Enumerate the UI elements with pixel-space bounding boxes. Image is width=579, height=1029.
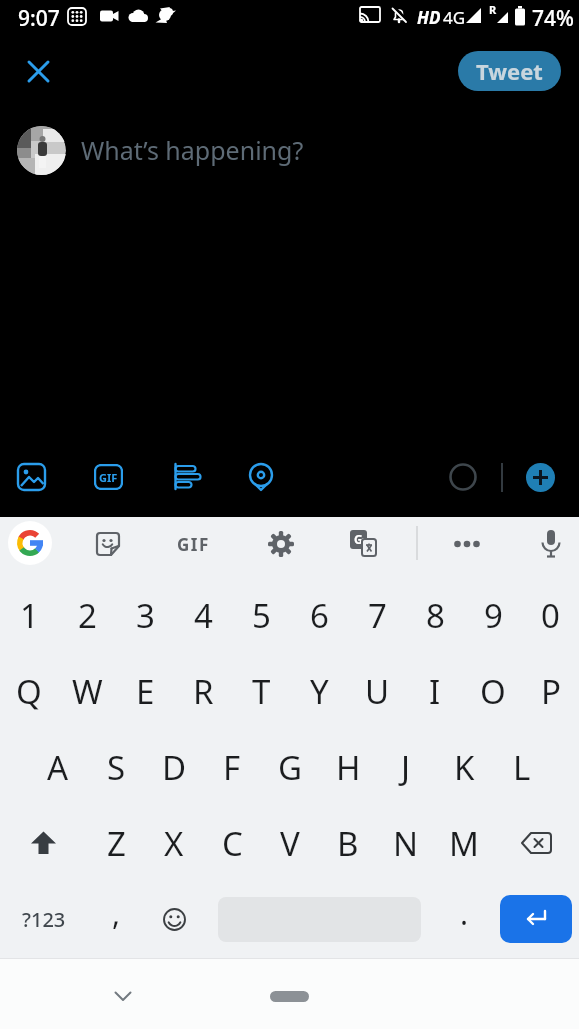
staticText: 9 [484,593,503,638]
staticText: D [162,745,187,790]
button[interactable] [8,521,52,565]
button[interactable]: Y [290,653,348,729]
button[interactable]: M [435,805,493,881]
button[interactable]: W [58,653,116,729]
button[interactable]: P [522,653,579,729]
button[interactable]: U [348,653,406,729]
button[interactable]: 5 [232,577,290,653]
staticText: S [107,745,126,790]
button[interactable]: G [344,524,384,564]
staticText: V [280,821,300,866]
button[interactable] [531,524,571,564]
staticText: 5 [252,593,271,638]
staticText: G [278,745,303,790]
button[interactable]: 6 [290,577,348,653]
staticText: Y [310,669,329,714]
button[interactable]: F [203,729,261,805]
button[interactable]: C [203,805,261,881]
button[interactable]: K [435,729,493,805]
button[interactable] [239,455,283,499]
button[interactable]: . [435,881,493,957]
button[interactable]: G [261,729,319,805]
button[interactable]: N [377,805,435,881]
staticText: W [72,669,103,714]
button[interactable]: T [232,653,290,729]
button[interactable] [103,980,143,1012]
staticText: 2 [78,593,97,638]
button[interactable]: O [464,653,522,729]
button[interactable] [270,991,309,1002]
staticText: R [489,2,497,17]
staticText: L [513,745,531,790]
staticText: Tweet [476,56,543,86]
button[interactable]: H [319,729,377,805]
button[interactable] [145,881,203,957]
button[interactable] [0,805,87,881]
button[interactable]: , [87,881,145,957]
button[interactable]: GIF [168,524,218,564]
button[interactable]: 1 [0,577,58,653]
staticText: 3 [136,593,155,638]
staticText: What’s happening? [81,133,304,167]
button[interactable]: Q [0,653,58,729]
staticText: 1 [20,593,39,638]
button[interactable]: I [406,653,464,729]
staticText: Q [16,669,42,714]
staticText: I [429,669,441,714]
button[interactable]: L [493,729,551,805]
staticText: GIF [177,533,210,556]
button[interactable]: Tweet [458,51,561,91]
staticText: GIF [99,470,118,485]
button[interactable]: B [319,805,377,881]
staticText: G [354,531,363,547]
staticText: , [112,893,121,934]
staticText: 4 [194,593,213,638]
button[interactable]: 8 [406,577,464,653]
button[interactable] [20,53,56,89]
button[interactable]: ?123 [0,881,87,957]
staticText: 7 [368,593,387,638]
staticText: 74% [532,4,574,33]
staticText: HD [417,6,441,29]
staticText: C [222,821,243,866]
button[interactable] [203,881,435,957]
button[interactable] [10,455,54,499]
staticText: U [365,669,390,714]
button[interactable]: 0 [522,577,579,653]
staticText: T [252,669,271,714]
staticText: 4G [443,6,466,29]
button[interactable]: V [261,805,319,881]
button[interactable] [261,524,301,564]
staticText: ?123 [22,906,66,933]
button[interactable] [526,463,555,492]
button[interactable]: 7 [348,577,406,653]
button[interactable]: R [174,653,232,729]
staticText: M [449,821,479,866]
button[interactable] [447,524,487,564]
staticText: Z [107,821,126,866]
staticText: A [47,745,69,790]
button[interactable]: S [87,729,145,805]
button[interactable] [493,881,579,957]
staticText: F [223,745,241,790]
button[interactable] [165,455,209,499]
staticText: 6 [310,593,329,638]
button[interactable]: 4 [174,577,232,653]
button[interactable] [493,805,579,881]
button[interactable]: A [29,729,87,805]
button[interactable] [88,524,128,564]
button[interactable] [17,126,66,175]
button[interactable]: X [145,805,203,881]
staticText: 8 [426,593,445,638]
staticText: . [460,893,469,934]
button[interactable]: 9 [464,577,522,653]
staticText: K [454,745,475,790]
button[interactable]: J [377,729,435,805]
button[interactable]: 2 [58,577,116,653]
button[interactable]: GIF [86,455,130,499]
button[interactable]: Z [87,805,145,881]
button[interactable]: E [116,653,174,729]
button[interactable]: D [145,729,203,805]
button[interactable]: 3 [116,577,174,653]
staticText: O [480,669,506,714]
